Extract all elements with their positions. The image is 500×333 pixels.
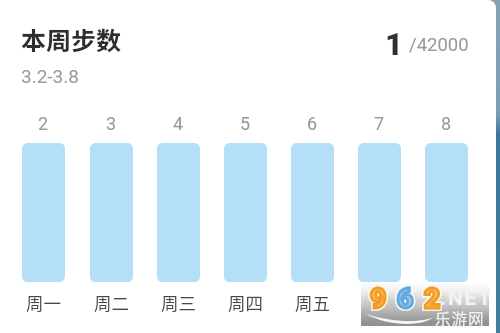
staticText: 本周步数 [21,21,122,57]
staticText: 1 [385,26,403,62]
staticText: /42000 [409,34,469,56]
button[interactable]: 8 [413,113,480,315]
staticText: 4 [173,113,184,134]
staticText: 2 [38,113,49,134]
staticText: 6 [397,282,414,315]
staticText: 6 [307,113,318,134]
staticText: 6 [397,282,414,315]
staticText: 周二 [94,290,129,315]
staticText: 2 [424,282,441,315]
staticText: 周六 [362,290,397,315]
staticText: 3 [106,113,117,134]
button[interactable]: 6 [279,113,346,315]
staticText: 8 [441,113,452,134]
button[interactable]: 2 [9,113,77,315]
staticText: 周三 [161,290,196,315]
button[interactable]: 本周步数 [0,0,496,100]
staticText: 周四 [228,290,263,315]
staticText: 3.2-3.8 [21,65,79,87]
staticText: 2 [424,282,441,315]
staticText: 周一 [26,290,61,315]
staticText: 5 [240,113,251,134]
button[interactable]: 3 [77,113,145,315]
staticText: 乐游网 [435,307,485,329]
staticText: 6 [397,282,414,315]
button[interactable]: 7 [346,113,413,315]
staticText: 9 [370,282,387,315]
staticText: 9 [370,282,387,315]
button[interactable]: 5 [212,113,279,315]
staticText: 周五 [295,290,330,315]
staticText: 周日 [429,290,464,315]
staticText: 7 [374,113,385,134]
staticText: 2 [424,282,441,315]
button[interactable]: 4 [145,113,212,315]
staticText: 9 [370,282,387,315]
staticText: .NET [440,286,493,310]
